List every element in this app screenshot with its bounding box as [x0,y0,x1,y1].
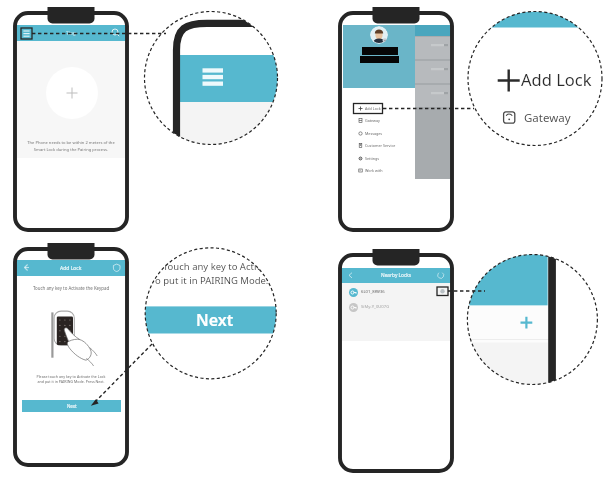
button[interactable]: Search [109,26,122,39]
staticText: Settings [365,156,380,161]
staticText: Gateway [524,110,571,126]
staticText: Messages [365,131,383,136]
button[interactable]: 6L01_8fW36 [349,284,449,300]
button[interactable]: Customer Service [358,140,416,151]
staticText: Touch any key to Activate the Keypad [21,285,121,291]
button[interactable]: Back [21,261,33,273]
staticText: Please touch any key to Activate the Loc… [21,374,121,384]
staticText: Next [196,309,276,331]
button[interactable]: Messages [358,128,416,139]
staticText: Add Lock [365,106,381,111]
button[interactable]: Add lock [46,67,98,119]
staticText: Customer Service [365,143,396,148]
button[interactable]: Help [111,261,123,273]
button[interactable]: Next [22,400,121,412]
button[interactable]: Profile [370,26,388,44]
button[interactable]: Open navigation menu [20,27,33,40]
button[interactable]: Work with [358,165,416,176]
staticText: Gateway [365,118,380,123]
staticText: Touch any key to Activate th [163,260,277,273]
staticText: The Phone needs to be within 2 meters of… [21,140,121,152]
button[interactable]: Tiog [15,25,127,41]
staticText: Add Lock [60,265,82,272]
staticText: Work with [365,168,383,173]
staticText: o put it in PAIRING Mode. Press Ne [155,274,277,287]
button[interactable]: Add Lock [358,103,416,114]
button[interactable]: Add Lock [15,260,127,276]
staticText: SiMy-Y_0U07G [361,304,390,310]
staticText: 6L01_8fW36 [361,289,385,295]
button[interactable]: Gateway [358,115,416,126]
button[interactable]: Settings [358,153,416,164]
staticText: Next [67,403,77,409]
staticText: Add Lock [521,68,592,90]
staticText: Nearby Locks [381,272,412,279]
button[interactable]: Nearby Locks [340,268,452,283]
button[interactable]: SiMy-Y_0U07G [349,299,449,315]
staticText: Tiog [66,30,76,37]
